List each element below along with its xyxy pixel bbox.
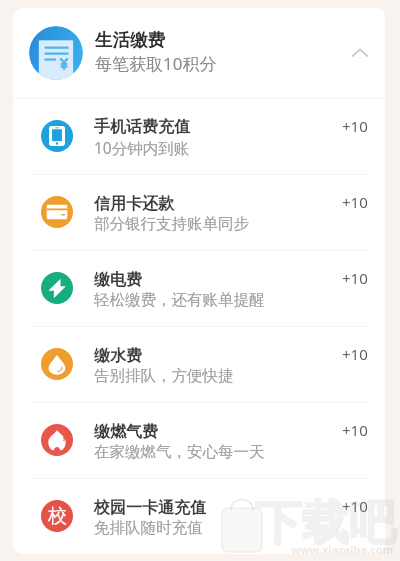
staticText: 轻松缴费，还有账单提醒	[94, 290, 265, 310]
staticText: +10	[342, 116, 368, 136]
button[interactable]: 信用卡还款	[13, 174, 385, 250]
button[interactable]: 缴电费	[13, 250, 385, 326]
staticText: +10	[342, 496, 368, 516]
button[interactable]: Collapse	[340, 33, 380, 73]
staticText: +10	[342, 268, 368, 288]
button[interactable]: 手机话费充值	[13, 98, 385, 174]
staticText: 下载吧	[255, 494, 396, 553]
staticText: +10	[342, 344, 368, 364]
staticText: 生活缴费	[95, 29, 165, 51]
staticText: 免排队随时充值	[94, 518, 203, 538]
staticText: 缴电费	[94, 270, 142, 290]
staticText: 校园一卡通充值	[94, 498, 206, 518]
staticText: 缴燃气费	[94, 422, 158, 442]
staticText: www.xiazaiba.com	[291, 542, 394, 557]
staticText: 手机话费充值	[94, 117, 190, 137]
staticText: 每笔获取10积分	[95, 52, 217, 75]
staticText: 10分钟内到账	[94, 137, 190, 158]
button[interactable]: 缴燃气费	[13, 402, 385, 478]
staticText: 校	[48, 504, 67, 528]
staticText: 缴水费	[94, 346, 142, 366]
staticText: 部分银行支持账单同步	[94, 214, 249, 234]
staticText: 告别排队，方便快捷	[94, 366, 234, 386]
button[interactable]: 生活缴费	[13, 8, 385, 98]
staticText: +10	[342, 192, 368, 212]
staticText: +10	[342, 420, 368, 440]
button[interactable]: 校	[13, 478, 385, 554]
staticText: 在家缴燃气，安心每一天	[94, 442, 265, 462]
staticText: 信用卡还款	[94, 194, 174, 214]
button[interactable]: 缴水费	[13, 326, 385, 402]
